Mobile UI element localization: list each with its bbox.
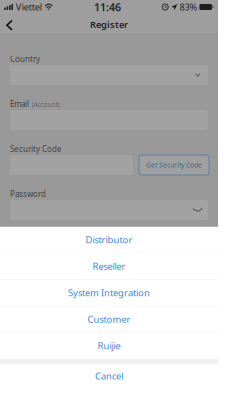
button[interactable]: System Integration [0, 280, 218, 306]
staticText: System Integration [68, 287, 150, 299]
staticText: Distributor [85, 234, 132, 246]
button[interactable]: Customer [0, 306, 218, 332]
staticText: Get Security Code [146, 161, 202, 169]
button[interactable]: Ruijie [0, 333, 218, 359]
staticText: (Account) [31, 100, 59, 109]
staticText: Viettel [16, 1, 42, 13]
staticText: Country [10, 53, 40, 64]
staticText: Register [90, 18, 128, 31]
button[interactable]: Distributor [0, 227, 218, 253]
button[interactable]: Get Security Code [139, 155, 209, 175]
staticText: Ruijie [97, 340, 120, 352]
staticText: 83% [179, 1, 197, 13]
staticText: Customer [87, 313, 130, 325]
staticText: Password [10, 188, 46, 199]
button[interactable]: Back [3, 18, 22, 32]
button[interactable]: Reseller [0, 253, 218, 279]
staticText: Email [10, 98, 29, 109]
staticText: 11:46 [94, 0, 121, 14]
button[interactable]: Cancel [0, 364, 218, 388]
staticText: Security Code [10, 143, 62, 154]
staticText: Cancel [95, 370, 123, 382]
staticText: Reseller [92, 260, 125, 272]
